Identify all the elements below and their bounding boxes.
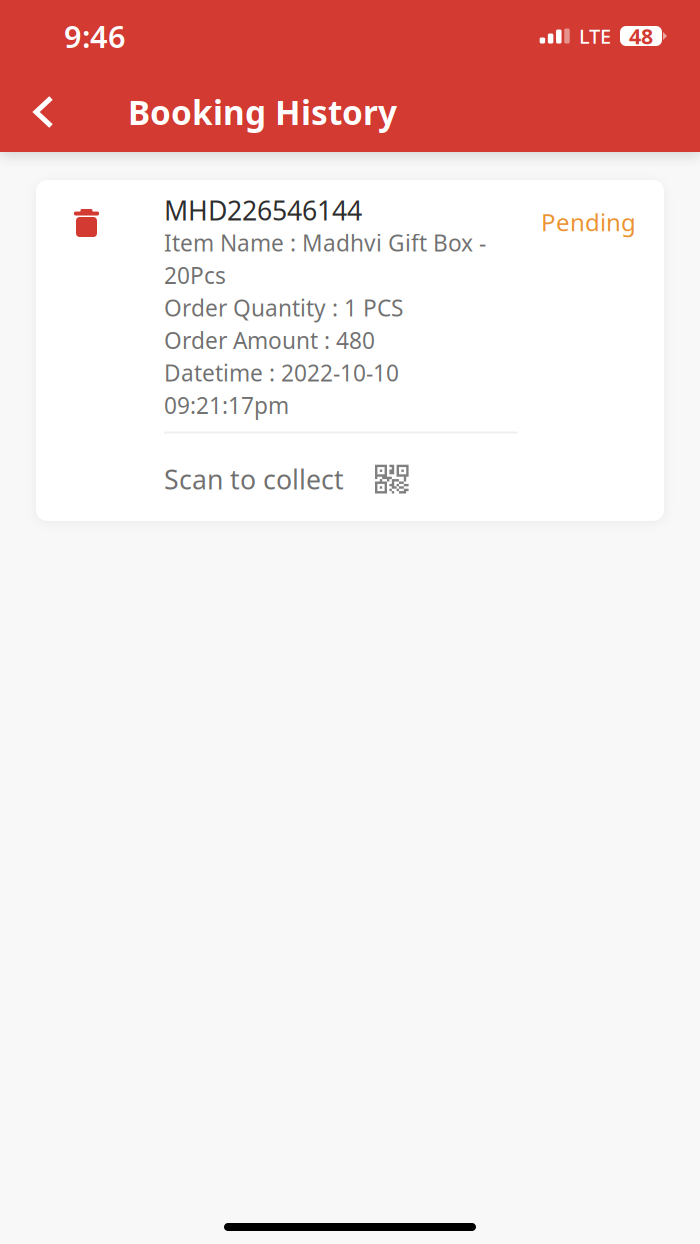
staticText: 48 [629,21,653,51]
staticText: Order Quantity : 1 PCS [164,293,403,323]
staticText: Booking History [128,89,397,135]
staticText: 09:21:17pm [164,390,289,420]
button[interactable]: Delete booking [36,194,164,257]
staticText: 20Pcs [164,260,226,290]
staticText: Datetime : 2022-10-10 [164,358,399,388]
staticText: Scan to collect [164,461,344,497]
staticText: 9:46 [64,15,126,57]
button[interactable]: Back [16,84,72,140]
staticText: Pending [541,206,636,238]
button[interactable]: Scan to collect [36,433,664,497]
staticText: LTE [579,22,611,50]
staticText: Item Name : Madhvi Gift Box - [164,228,486,258]
staticText: MHD226546144 [164,192,362,228]
staticText: Order Amount : 480 [164,325,375,355]
